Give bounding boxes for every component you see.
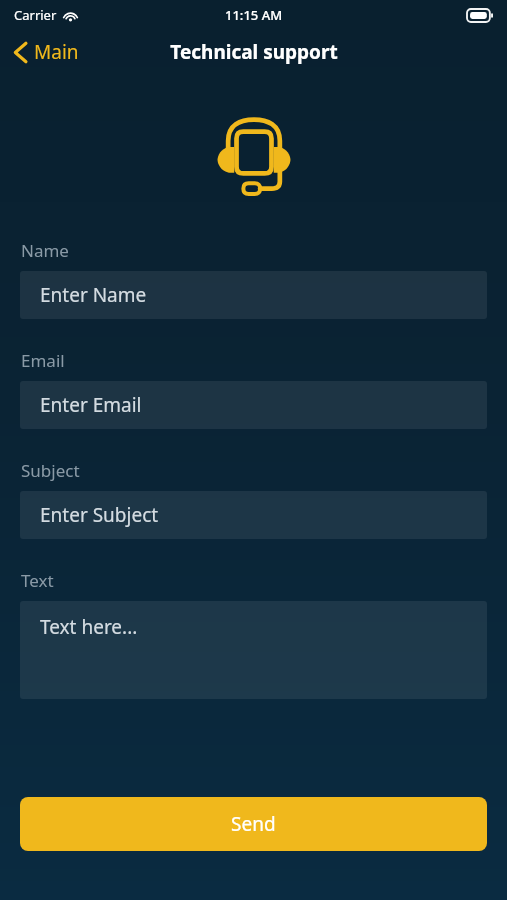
staticText: Text xyxy=(21,569,54,592)
button[interactable]: Text here... xyxy=(20,601,487,699)
staticText: Name xyxy=(21,239,69,262)
button[interactable]: Back xyxy=(0,33,89,71)
other: Support headset xyxy=(216,118,292,194)
staticText: Text here... xyxy=(40,614,138,640)
staticText: Enter Subject xyxy=(40,502,159,528)
staticText: Email xyxy=(21,349,65,372)
button[interactable]: Send xyxy=(20,797,487,851)
staticText: Enter Name xyxy=(40,282,147,308)
button[interactable]: Enter Subject xyxy=(20,491,487,539)
staticText: Subject xyxy=(21,459,80,482)
other: Back xyxy=(14,42,27,63)
staticText: Main xyxy=(34,39,79,65)
staticText: Enter Email xyxy=(40,392,142,418)
staticText: Carrier xyxy=(14,6,57,24)
button[interactable]: Enter Email xyxy=(20,381,487,429)
staticText: 11:15 AM xyxy=(225,6,283,24)
staticText: Technical support xyxy=(170,39,338,65)
staticText: Send xyxy=(231,811,276,837)
button[interactable]: Enter Name xyxy=(20,271,487,319)
